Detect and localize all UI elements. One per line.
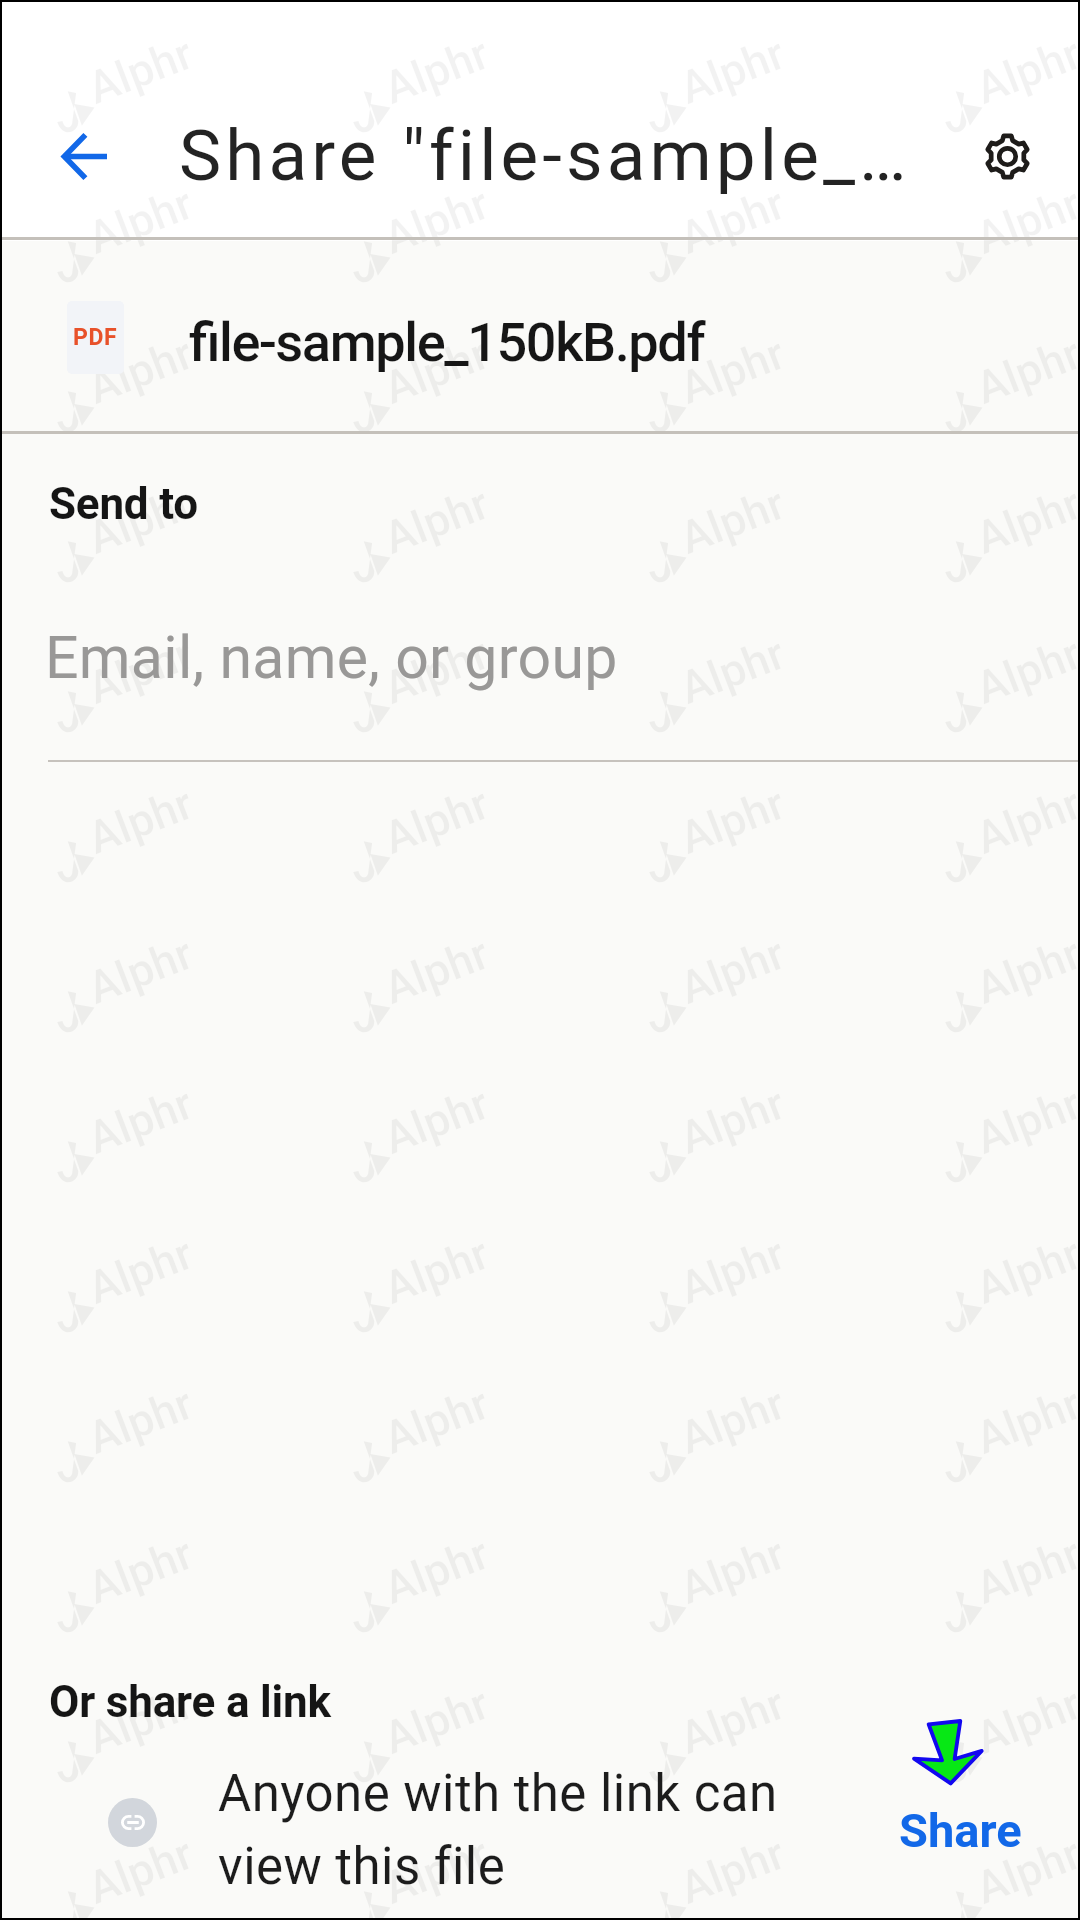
staticText: Alphr (80, 927, 200, 1015)
staticText: Alphr (376, 777, 496, 865)
staticText: Alphr (376, 27, 496, 115)
button[interactable]: Back (40, 112, 128, 200)
button[interactable]: Link sharing settings (108, 1798, 157, 1847)
staticText: Alphr (672, 177, 792, 265)
staticText: Alphr (80, 327, 200, 415)
button[interactable]: Anyone with the link can (217, 1755, 837, 1920)
staticText: Alphr (672, 1677, 792, 1765)
staticText: Alphr (672, 927, 792, 1015)
staticText: Alphr (376, 177, 496, 265)
staticText: file-sample_150kB.pdf (189, 311, 705, 374)
staticText: Alphr (968, 327, 1080, 415)
staticText: Alphr (968, 1527, 1080, 1615)
staticText: Alphr (968, 1377, 1080, 1465)
staticText: Alphr (672, 1527, 792, 1615)
button[interactable] (0, 240, 1080, 434)
staticText: Share (899, 1803, 1022, 1858)
staticText: Alphr (376, 477, 496, 565)
staticText: Alphr (376, 1077, 496, 1165)
staticText: Alphr (80, 177, 200, 265)
staticText: Alphr (968, 477, 1080, 565)
staticText: Alphr (968, 1227, 1080, 1315)
staticText: Alphr (376, 1227, 496, 1315)
staticText: Alphr (376, 627, 496, 715)
staticText: Alphr (672, 1377, 792, 1465)
staticText: Alphr (80, 627, 200, 715)
staticText: Email, name, or group (45, 623, 618, 692)
staticText: Alphr (80, 477, 200, 565)
staticText: Alphr (80, 1227, 200, 1315)
staticText: Alphr (80, 1377, 200, 1465)
staticText: Alphr (672, 627, 792, 715)
staticText: Alphr (672, 27, 792, 115)
staticText: Alphr (80, 1677, 200, 1765)
staticText: view this file (218, 1837, 506, 1897)
staticText: Alphr (672, 777, 792, 865)
staticText: Alphr (968, 27, 1080, 115)
staticText: Alphr (80, 1077, 200, 1165)
staticText: Alphr (672, 327, 792, 415)
staticText: Alphr (376, 1827, 496, 1915)
staticText: Alphr (376, 327, 496, 415)
button[interactable]: Share (866, 1790, 1056, 1876)
staticText: PDF (73, 324, 118, 351)
staticText: Alphr (376, 927, 496, 1015)
staticText: Alphr (672, 477, 792, 565)
staticText: Alphr (672, 1077, 792, 1165)
staticText: Alphr (376, 1377, 496, 1465)
staticText: Alphr (968, 627, 1080, 715)
staticText: Alphr (968, 777, 1080, 865)
button[interactable]: Settings (963, 112, 1051, 200)
staticText: Alphr (80, 1527, 200, 1615)
staticText: Alphr (80, 777, 200, 865)
staticText: Alphr (80, 1827, 200, 1915)
staticText: Alphr (968, 927, 1080, 1015)
staticText: Alphr (968, 1077, 1080, 1165)
staticText: Send to (49, 478, 198, 530)
staticText: Alphr (672, 1227, 792, 1315)
staticText: Alphr (968, 1827, 1080, 1915)
staticText: Alphr (80, 27, 200, 115)
staticText: Alphr (376, 1527, 496, 1615)
staticText: Alphr (376, 1677, 496, 1765)
staticText: Or share a link (49, 1676, 331, 1728)
staticText: Alphr (672, 1827, 792, 1915)
staticText: Alphr (968, 1677, 1080, 1765)
staticText: Anyone with the link can (218, 1764, 778, 1824)
staticText: Share "file-sample_… (179, 114, 911, 197)
staticText: Alphr (968, 177, 1080, 265)
